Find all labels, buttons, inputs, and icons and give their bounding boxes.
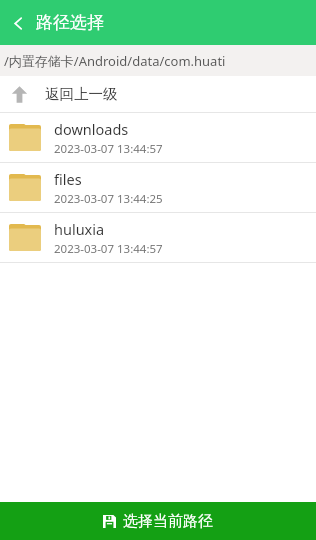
button[interactable]: huluxia xyxy=(0,213,316,263)
staticText: 返回上一级 xyxy=(45,85,118,103)
staticText: 选择当前路径 xyxy=(123,512,213,531)
staticText: downloads xyxy=(54,119,129,139)
staticText: 路径选择 xyxy=(36,12,104,33)
button[interactable]: 选择当前路径 xyxy=(0,502,316,540)
button[interactable]: Back xyxy=(0,5,36,41)
staticText: 2023-03-07 13:44:25 xyxy=(54,191,163,207)
staticText: files xyxy=(54,169,82,189)
staticText: huluxia xyxy=(54,219,105,239)
button[interactable]: files xyxy=(0,163,316,213)
button[interactable]: 返回上一级 xyxy=(0,76,316,113)
staticText: /内置存储卡/Android/data/com.huati xyxy=(4,52,226,70)
button[interactable]: downloads xyxy=(0,113,316,163)
staticText: 2023-03-07 13:44:57 xyxy=(54,141,163,157)
staticText: 2023-03-07 13:44:57 xyxy=(54,241,163,257)
